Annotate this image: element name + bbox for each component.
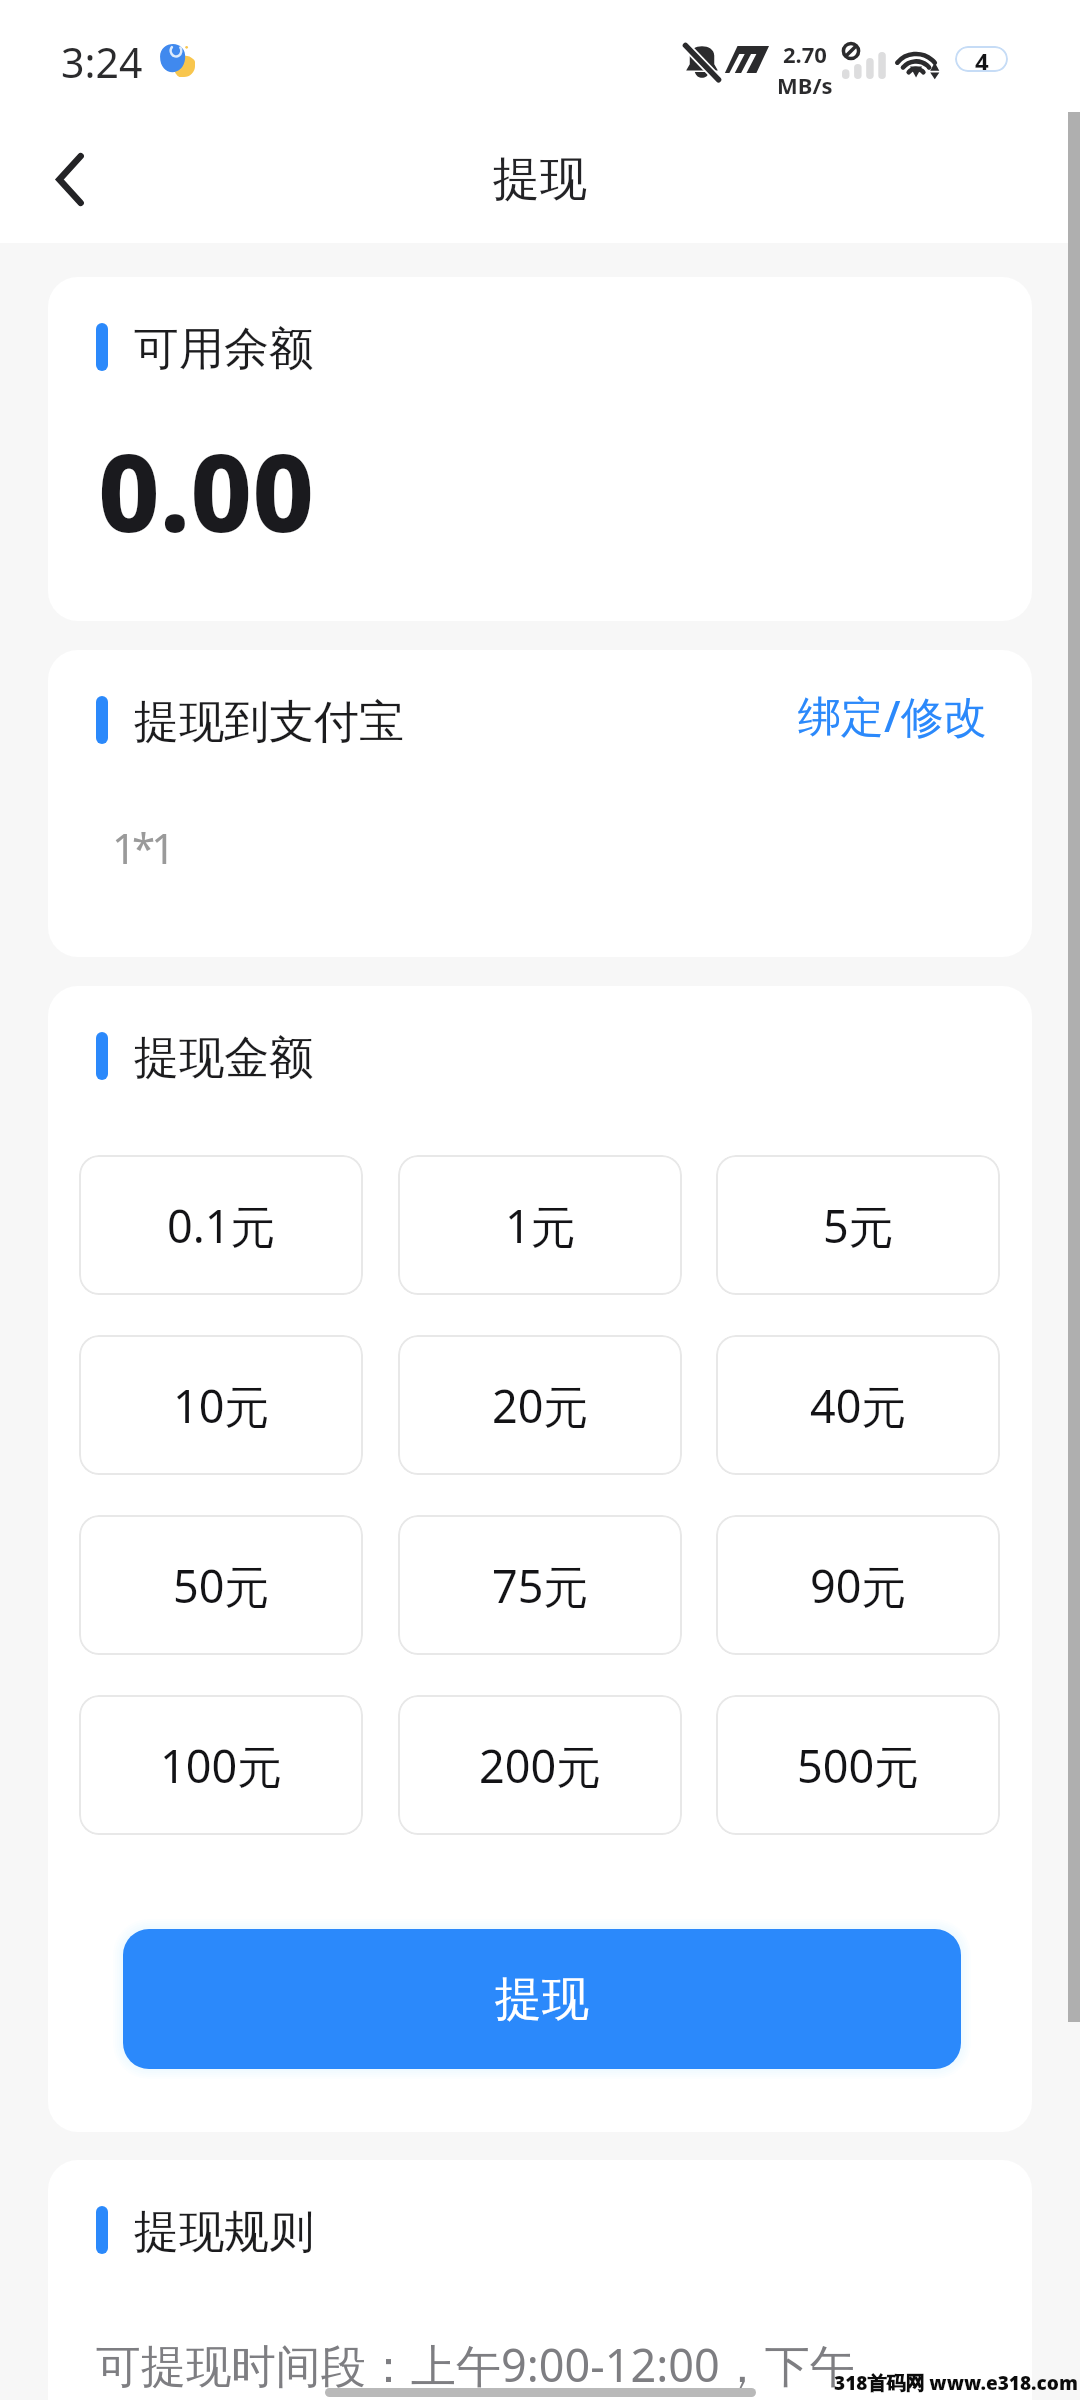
staticText: 318首码网 www.e318.com — [834, 2370, 1078, 2396]
staticText: 2.70 — [783, 39, 827, 69]
button[interactable]: 20元 — [398, 1335, 682, 1475]
staticText: 40元 — [810, 1375, 907, 1436]
staticText: 500元 — [797, 1735, 920, 1796]
staticText: 50元 — [173, 1555, 270, 1616]
staticText: 3:24 — [61, 34, 143, 90]
staticText: 10元 — [173, 1375, 270, 1436]
staticText: 0.00 — [98, 418, 315, 564]
button[interactable]: 90元 — [716, 1515, 1000, 1655]
staticText: 75元 — [492, 1555, 589, 1616]
button[interactable]: 200元 — [398, 1695, 682, 1835]
staticText: 100元 — [160, 1735, 283, 1796]
button[interactable]: 40元 — [716, 1335, 1000, 1475]
button[interactable]: 0.1元 — [79, 1155, 363, 1295]
staticText: 4 — [975, 46, 989, 71]
button[interactable]: Back — [28, 137, 112, 221]
button[interactable]: 500元 — [716, 1695, 1000, 1835]
button[interactable]: 75元 — [398, 1515, 682, 1655]
staticText: 0.1元 — [167, 1195, 276, 1256]
staticText: 20元 — [492, 1375, 589, 1436]
button[interactable]: 10元 — [79, 1335, 363, 1475]
staticText: 提现金额 — [134, 1030, 314, 1087]
button[interactable]: 50元 — [79, 1515, 363, 1655]
staticText: 200元 — [479, 1735, 602, 1796]
staticText: 1元 — [505, 1195, 576, 1256]
button[interactable]: 提现 — [123, 1929, 961, 2069]
button[interactable]: 1元 — [398, 1155, 682, 1295]
staticText: 1*1 — [112, 819, 172, 876]
button[interactable]: 绑定/修改 — [798, 686, 987, 745]
staticText: 90元 — [810, 1555, 907, 1616]
staticText: 提现 — [495, 1970, 589, 2029]
staticText: MB/s — [777, 70, 833, 100]
staticText: 提现规则 — [134, 2204, 314, 2261]
staticText: 5元 — [823, 1195, 894, 1256]
staticText: 绑定/修改 — [798, 686, 987, 745]
button[interactable]: 5元 — [716, 1155, 1000, 1295]
staticText: 提现到支付宝 — [134, 694, 404, 751]
staticText: 提现 — [493, 150, 587, 209]
button[interactable]: 100元 — [79, 1695, 363, 1835]
staticText: 可用余额 — [134, 321, 314, 378]
staticText: 可提现时间段：上午9:00-12:00，下午 — [96, 2334, 855, 2395]
